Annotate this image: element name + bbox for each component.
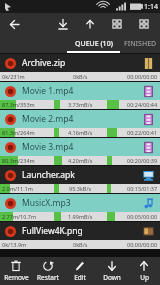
staticText: FINISHED xyxy=(124,39,157,49)
staticText: 0k/231m xyxy=(2,73,25,80)
staticText: 00:00/00:00 xyxy=(127,241,158,248)
staticText: 00:15/01:37 xyxy=(127,185,158,192)
button[interactable]: Movie 1.mp4 xyxy=(0,81,160,109)
button[interactable]: Movie 3.mp4 xyxy=(0,137,160,165)
button[interactable]: Archive.zip xyxy=(0,53,160,81)
staticText: 2.0m/11.1m xyxy=(2,185,34,192)
button[interactable]: Select mode xyxy=(130,13,157,35)
button[interactable]: FullView4K.png xyxy=(0,221,160,249)
button[interactable]: Back xyxy=(0,13,28,35)
staticText: Launcher.apk xyxy=(22,169,75,181)
staticText: Movie 2.mp4 xyxy=(22,113,74,125)
button[interactable]: Edit xyxy=(64,257,96,285)
button[interactable]: Remove xyxy=(0,257,32,285)
button[interactable]: Upload all xyxy=(76,13,103,35)
staticText: 00:00/00:00 xyxy=(127,73,158,80)
staticText: Movie 3.mp4 xyxy=(22,141,74,153)
button[interactable]: Up xyxy=(128,257,160,285)
staticText: Restart xyxy=(37,273,59,282)
staticText: MusicX.mp3 xyxy=(22,197,71,209)
button[interactable]: Download all xyxy=(49,13,76,35)
staticText: 0kB/s xyxy=(73,73,88,80)
staticText: 0k/13.9m xyxy=(2,241,27,248)
staticText: Movie 1.mp4 xyxy=(22,85,74,97)
button[interactable]: Movie 2.mp4 xyxy=(0,109,160,137)
staticText: 00:24/00:44 xyxy=(127,101,158,108)
button[interactable]: Restart xyxy=(32,257,64,285)
staticText: 00:20/00:39 xyxy=(127,157,158,164)
staticText: Down xyxy=(103,273,121,282)
staticText: 11:14 xyxy=(140,2,158,12)
staticText: 95.3kB/s xyxy=(69,185,92,192)
button[interactable]: Down xyxy=(96,257,128,285)
staticText: 00:05/00:00 xyxy=(127,213,158,220)
staticText: Remove xyxy=(4,273,29,282)
staticText: 1.99mB/s xyxy=(68,213,93,220)
button[interactable]: Launcher.apk xyxy=(0,165,160,193)
staticText: 4.16mB/s xyxy=(68,129,93,136)
staticText: 87.3m/353m xyxy=(2,101,35,108)
staticText: Up xyxy=(140,273,149,282)
staticText: FullView4K.png xyxy=(22,225,83,237)
staticText: 80.3m/234m xyxy=(2,157,35,164)
staticText: QUEUE (10) xyxy=(75,39,113,49)
staticText: 0kB/s xyxy=(73,241,88,248)
staticText: 00:22/00:41 xyxy=(127,129,158,136)
button[interactable]: Grid view xyxy=(103,13,130,35)
button[interactable]: FINISHED xyxy=(120,35,160,53)
button[interactable]: MusicX.mp3 xyxy=(0,193,160,221)
staticText: Edit xyxy=(74,273,86,282)
staticText: Archive.zip xyxy=(22,57,66,69)
staticText: 3.73mB/s xyxy=(68,101,93,108)
button[interactable]: QUEUE (10) xyxy=(67,35,120,53)
staticText: 2.77m/10.7m xyxy=(2,213,37,220)
staticText: 4.20mB/s xyxy=(68,157,93,164)
staticText: 81.3m/264m xyxy=(2,129,35,136)
